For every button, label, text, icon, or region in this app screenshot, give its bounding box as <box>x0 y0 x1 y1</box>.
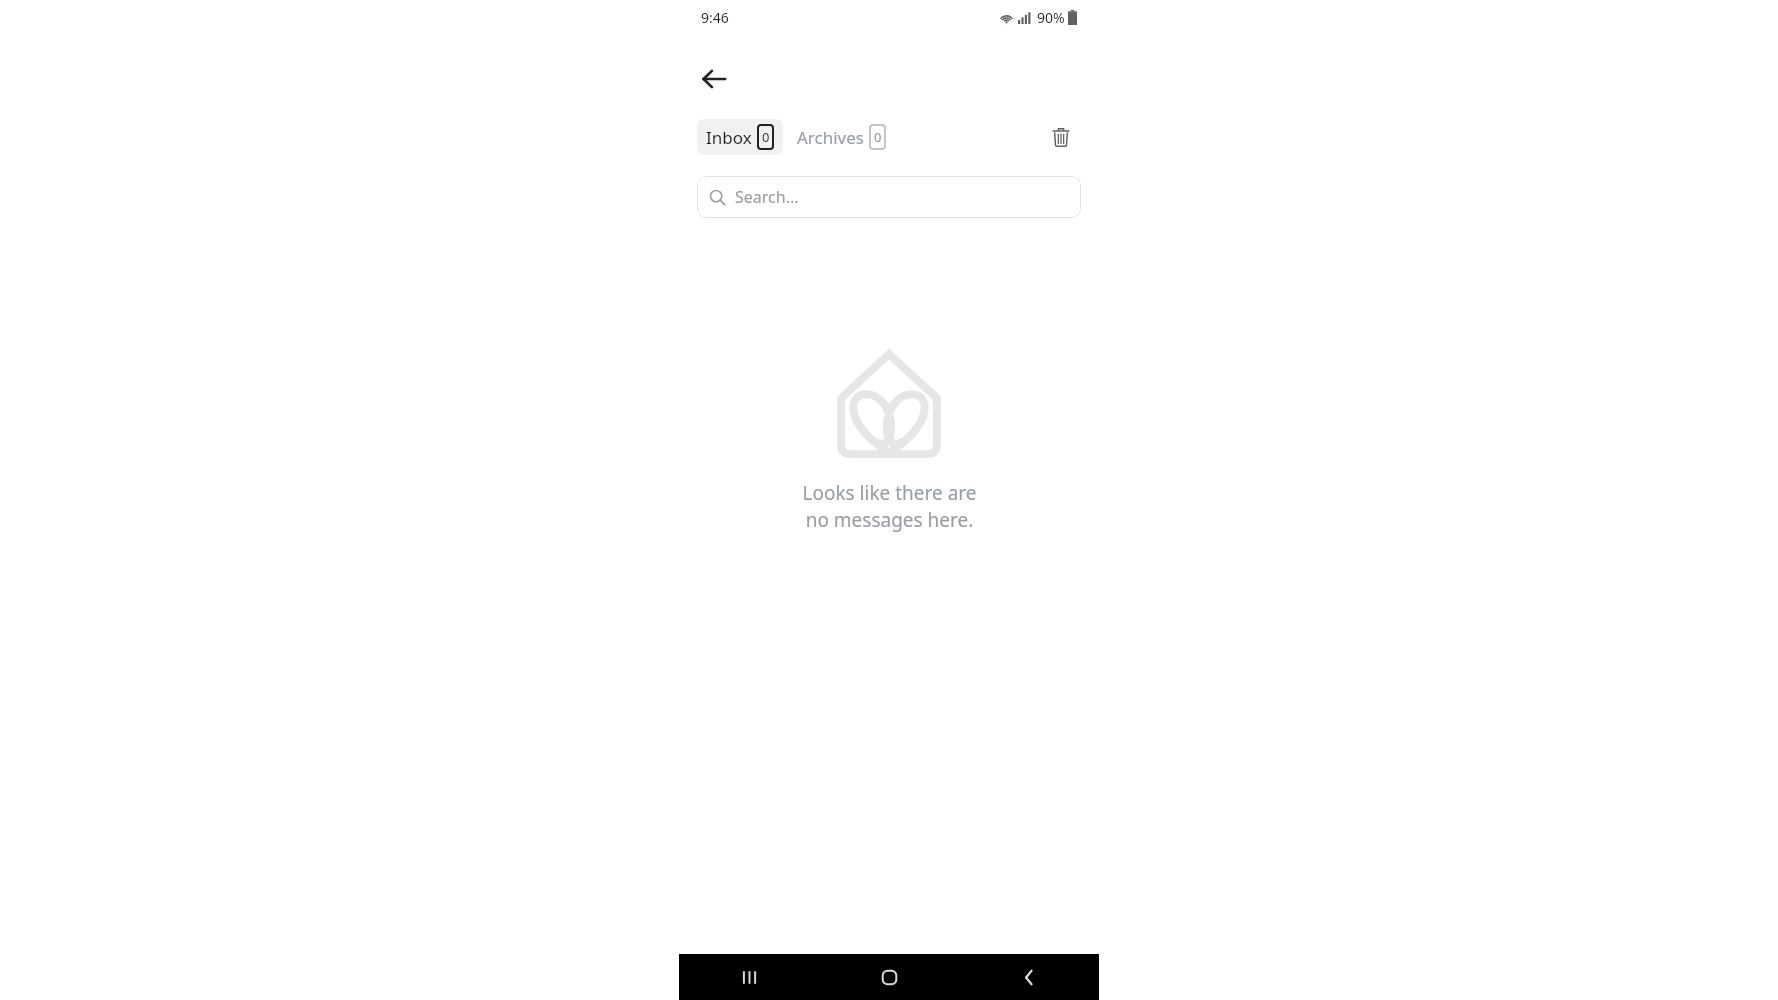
button[interactable]: Recents <box>679 954 819 1000</box>
button[interactable]: Back <box>959 954 1099 1000</box>
staticText: Looks like there are no messages here. <box>802 480 977 533</box>
staticText: Archives <box>797 126 864 149</box>
staticText: 0 <box>762 128 770 146</box>
button[interactable]: Search... <box>697 176 1081 218</box>
staticText: 0 <box>874 128 882 146</box>
staticText: 90% <box>1037 8 1065 27</box>
button[interactable]: Back <box>691 56 737 102</box>
button[interactable]: Inbox <box>697 119 783 155</box>
button[interactable]: Home <box>819 954 959 1000</box>
staticText: Inbox <box>706 126 752 149</box>
button[interactable]: Delete <box>1041 117 1081 157</box>
button[interactable]: Archives <box>793 119 890 155</box>
staticText: Search... <box>735 186 799 208</box>
staticText: 9:46 <box>701 8 729 27</box>
